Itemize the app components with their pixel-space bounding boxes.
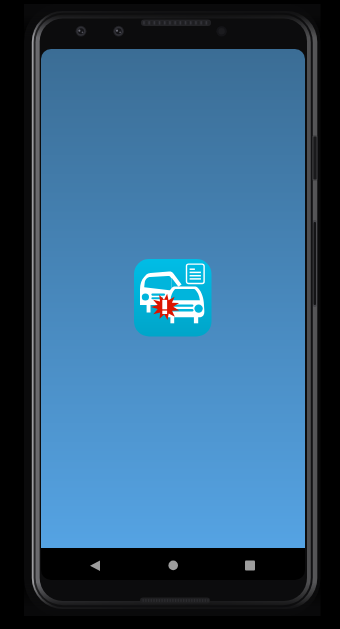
button[interactable]: Back [84,553,108,577]
button[interactable]: Accident report app [134,259,212,336]
button[interactable]: Home [162,553,186,577]
button[interactable]: Recent apps [238,553,262,577]
